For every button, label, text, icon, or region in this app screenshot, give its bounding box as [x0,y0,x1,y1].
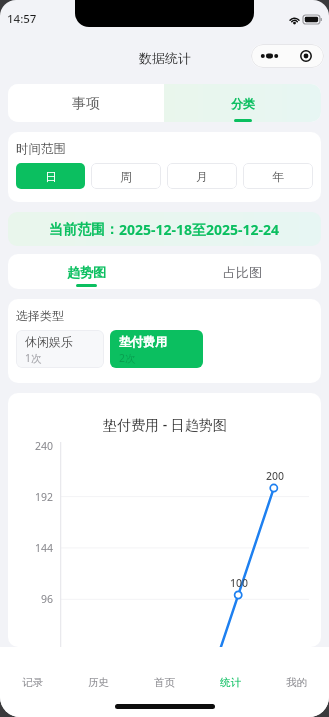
staticText: 当前范围： [49,221,119,239]
button[interactable]: 统计 [197,647,263,717]
staticText: 占比图 [223,264,262,280]
button[interactable]: 年 [243,163,313,189]
button[interactable]: 日 [16,163,85,189]
staticText: 分类 [231,96,255,111]
staticText: 垫付费用 [119,334,167,349]
staticText: 月 [196,169,208,184]
button[interactable]: More [251,44,287,68]
staticText: 年 [272,169,284,184]
staticText: 周 [120,169,132,184]
button[interactable]: 事项 [8,84,164,122]
button[interactable]: 历史 [65,647,131,717]
button[interactable]: 当前范围： [8,212,321,246]
button[interactable]: 趋势图 [8,254,164,289]
staticText: 统计 [220,676,241,689]
staticText: 192 [35,490,54,504]
staticText: 时间范围 [16,141,66,157]
staticText: 14:57 [7,11,37,27]
staticText: 日 [45,169,57,184]
staticText: 休闲娱乐 [25,334,73,349]
staticText: 2025-12-18至2025-12-24 [119,220,280,239]
staticText: 240 [35,439,54,453]
staticText: 事项 [72,95,100,113]
staticText: 数据统计 [139,50,191,66]
button[interactable]: 我的 [263,647,329,717]
staticText: 历史 [88,676,109,689]
button[interactable]: 记录 [0,647,65,717]
button[interactable]: Close [287,44,324,68]
staticText: 1次 [25,351,42,365]
button[interactable]: 分类 [164,84,321,122]
button[interactable]: 月 [167,163,237,189]
staticText: 垫付费用 - 日趋势图 [103,415,227,434]
staticText: 首页 [154,676,175,689]
button[interactable]: 周 [91,163,161,189]
button[interactable]: 首页 [131,647,197,717]
button[interactable]: 占比图 [164,254,321,289]
staticText: 144 [35,541,54,555]
staticText: 100 [230,576,249,590]
staticText: 趋势图 [67,264,106,280]
staticText: 96 [41,592,54,606]
staticText: 选择类型 [16,308,64,323]
staticText: 我的 [286,676,307,689]
button[interactable]: 垫付费用 [110,330,203,368]
staticText: 2次 [119,351,136,365]
staticText: 记录 [22,676,43,689]
button[interactable]: 休闲娱乐 [16,330,104,368]
staticText: 200 [266,469,285,483]
